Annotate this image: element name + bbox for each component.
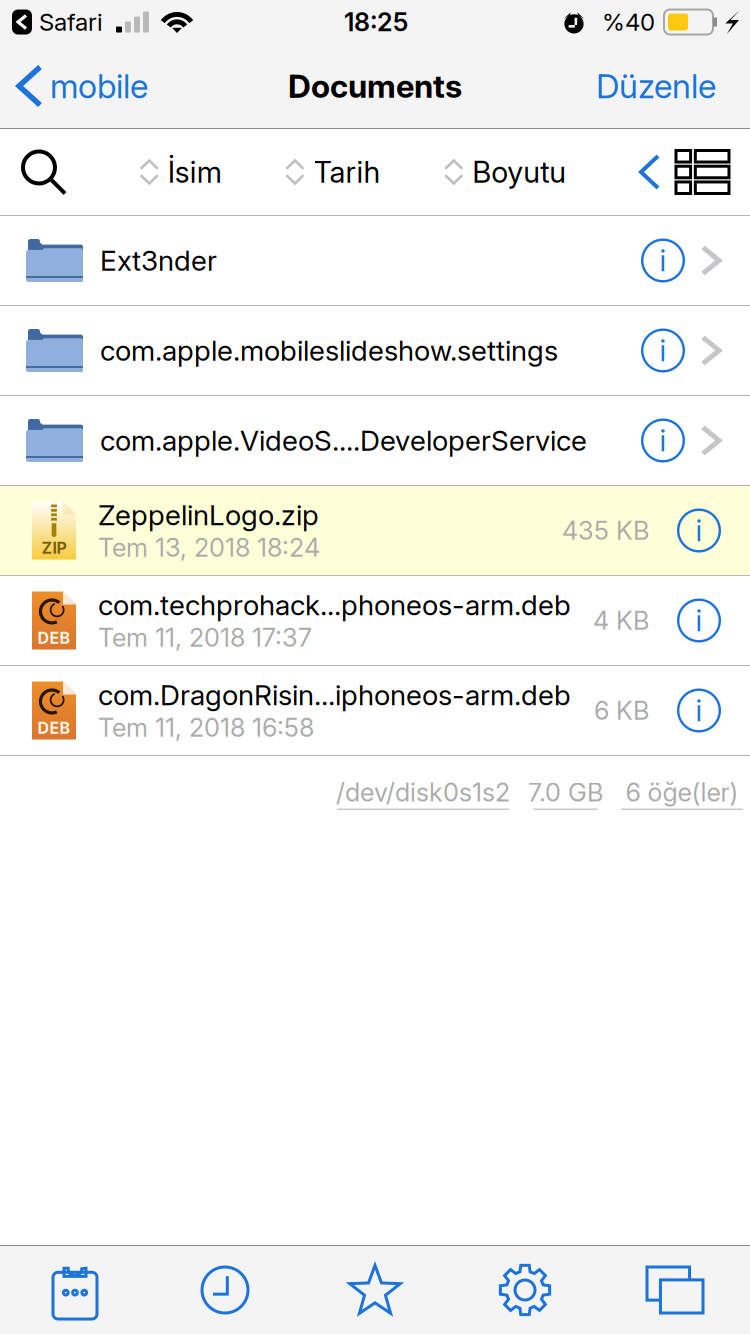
staticText: İsim <box>168 154 222 190</box>
button[interactable]: com.apple.VideoS....DeveloperService <box>0 396 750 486</box>
staticText: Düzenle <box>596 66 716 106</box>
button[interactable]: Tarih <box>282 129 384 215</box>
button[interactable]: mobile <box>0 44 162 128</box>
staticText: mobile <box>50 66 148 106</box>
button[interactable]: Boyutu <box>441 129 570 215</box>
staticText: 18:25 <box>344 7 408 37</box>
button[interactable]: Info <box>641 238 685 282</box>
button[interactable]: Favourites <box>300 1246 450 1334</box>
staticText: i <box>659 423 666 458</box>
staticText: Tarih <box>313 154 380 190</box>
staticText: i <box>659 243 666 278</box>
staticText: ZeppelinLogo.zip <box>98 498 319 532</box>
button[interactable]: Düzenle <box>580 44 750 128</box>
staticText: 7.0 GB <box>528 777 603 808</box>
button[interactable]: Info <box>677 688 721 732</box>
button[interactable]: DEB <box>0 576 750 666</box>
button[interactable]: DEB <box>0 666 750 756</box>
staticText: com.apple.VideoS....DeveloperService <box>100 424 587 457</box>
button[interactable]: Previous <box>627 129 672 215</box>
button[interactable]: ZIP <box>0 486 750 576</box>
staticText: i <box>695 513 702 548</box>
button[interactable]: Settings <box>450 1246 600 1334</box>
staticText: ZIP <box>41 538 66 557</box>
staticText: 435 KB <box>562 515 649 546</box>
staticText: com.techprohack...phoneos-arm.deb <box>98 588 571 622</box>
staticText: i <box>695 693 702 728</box>
button[interactable]: Recents <box>150 1246 300 1334</box>
button[interactable]: Search <box>0 129 80 215</box>
staticText: com.apple.mobileslideshow.settings <box>100 334 558 367</box>
button[interactable]: Safari <box>0 7 103 36</box>
staticText: i <box>659 333 666 368</box>
button[interactable]: Info <box>641 418 685 462</box>
staticText: Safari <box>39 7 103 36</box>
button[interactable]: Info <box>677 598 721 642</box>
staticText: 6 öğe(ler) <box>625 777 738 808</box>
button[interactable]: İsim <box>137 129 226 215</box>
button[interactable]: Clipboard <box>0 1246 150 1334</box>
button[interactable]: Info <box>641 328 685 372</box>
staticText: Boyutu <box>472 154 566 190</box>
staticText: DEB <box>37 628 70 647</box>
staticText: Ext3nder <box>100 244 217 277</box>
staticText: Tem 11, 2018 17:37 <box>98 622 312 653</box>
button[interactable]: Change view <box>672 129 750 215</box>
staticText: DEB <box>37 718 70 737</box>
button[interactable]: com.apple.mobileslideshow.settings <box>0 306 750 396</box>
staticText: Tem 11, 2018 16:58 <box>98 712 314 743</box>
button[interactable]: Info <box>677 508 721 552</box>
staticText: 4 KB <box>593 605 649 636</box>
button[interactable]: Ext3nder <box>0 216 750 306</box>
staticText: com.DragonRisin...iphoneos-arm.deb <box>98 678 571 712</box>
staticText: /dev/disk0s1s2 <box>336 777 510 808</box>
button[interactable]: Windows <box>600 1246 750 1334</box>
staticText: Documents <box>288 67 462 105</box>
staticText: Tem 13, 2018 18:24 <box>98 532 320 563</box>
staticText: %40 <box>602 7 655 36</box>
staticText: 6 KB <box>594 695 649 726</box>
staticText: i <box>695 603 702 638</box>
